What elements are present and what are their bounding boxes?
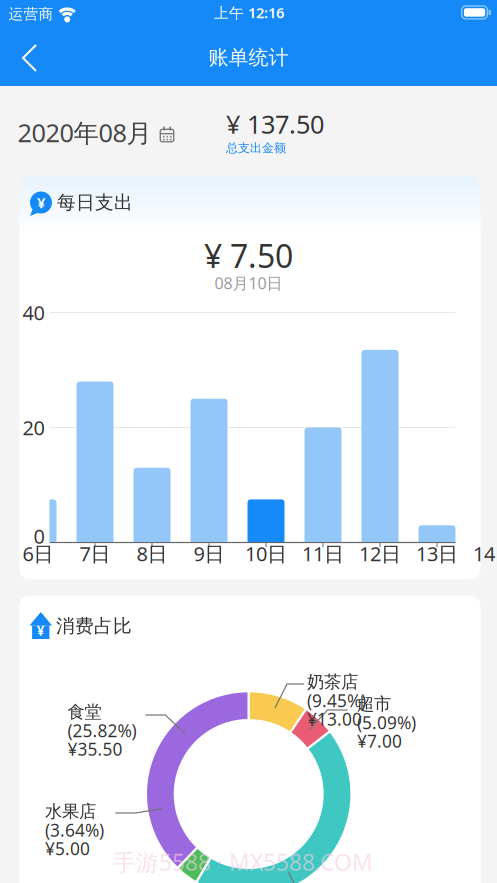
staticText: (5.09%) [357,711,416,734]
staticText: 超市 [357,693,391,715]
staticText: 水果店 [45,801,96,822]
staticText: ¥7.00 [357,729,402,752]
staticText: ¥ [37,193,45,212]
staticText: ¥35.50 [67,737,122,760]
staticText: 7日 [79,540,110,567]
staticText: 食堂 [67,701,101,723]
staticText: ¥ 7.50 [204,234,293,277]
staticText: 2020年08月 [17,116,151,149]
staticText: 11日 [302,540,344,567]
staticText: 手游5588 · MX5588.COM [113,847,373,877]
staticText: ¥ [37,622,45,639]
staticText: 08月10日 [214,272,282,294]
staticText: ¥ 137.50 [226,107,324,141]
staticText: ¥13.00 [307,707,362,730]
staticText: 8日 [136,540,167,567]
staticText: 9日 [193,540,224,567]
staticText: (3.64%) [45,818,104,841]
staticText: 消费占比 [56,614,132,637]
staticText: 6日 [22,540,53,567]
staticText: (25.82%) [67,719,136,742]
staticText: 10日 [245,540,287,567]
staticText: 账单统计 [208,45,288,70]
button[interactable]: 2020年08月 [17,117,247,147]
staticText: 12日 [359,540,401,567]
staticText: 0 [33,523,44,549]
staticText: ¥5.00 [45,837,90,860]
staticText: 上午 12:16 [214,3,284,22]
staticText: 总支出金额 [226,141,286,155]
staticText: 13日 [416,540,458,567]
button[interactable]: Back [0,0,50,86]
staticText: (9.45%) [307,689,366,712]
staticText: 14日 [473,540,497,567]
staticText: 奶茶店 [307,671,358,693]
staticText: 每日支出 [57,191,133,214]
staticText: 40 [22,299,44,326]
staticText: 运营商 [8,5,53,23]
staticText: 20 [22,414,44,441]
